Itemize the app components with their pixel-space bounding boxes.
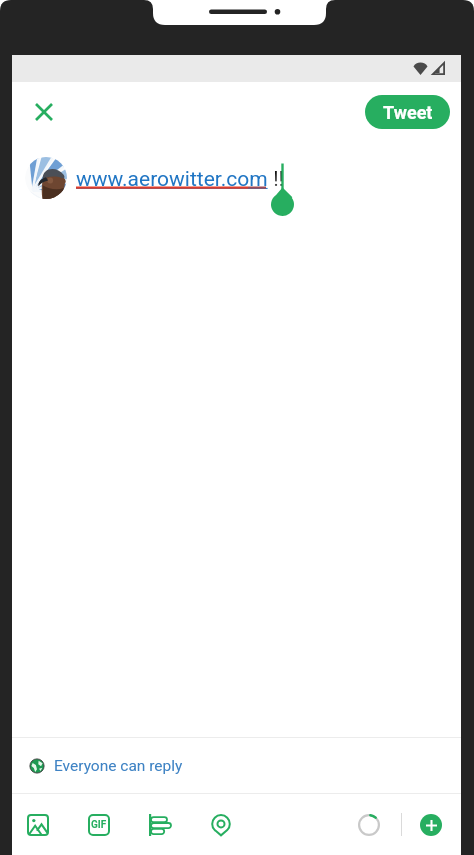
- staticText: GIF: [91, 819, 107, 831]
- staticText: www.aerowitter.com: [76, 167, 268, 192]
- button[interactable]: Add GIF: [81, 807, 117, 843]
- button[interactable]: Add poll: [142, 807, 178, 843]
- button[interactable]: Tweet: [365, 95, 450, 129]
- button[interactable]: Everyone can reply: [29, 757, 183, 775]
- staticText: Tweet: [383, 102, 433, 123]
- button[interactable]: Add photo: [20, 807, 56, 843]
- button[interactable]: Close: [20, 88, 68, 136]
- button[interactable]: Add another tweet: [420, 814, 442, 836]
- staticText: Everyone can reply: [54, 757, 183, 775]
- button[interactable]: Add location: [203, 807, 239, 843]
- staticText: !!: [268, 167, 285, 192]
- button[interactable]: Character count: [354, 810, 384, 840]
